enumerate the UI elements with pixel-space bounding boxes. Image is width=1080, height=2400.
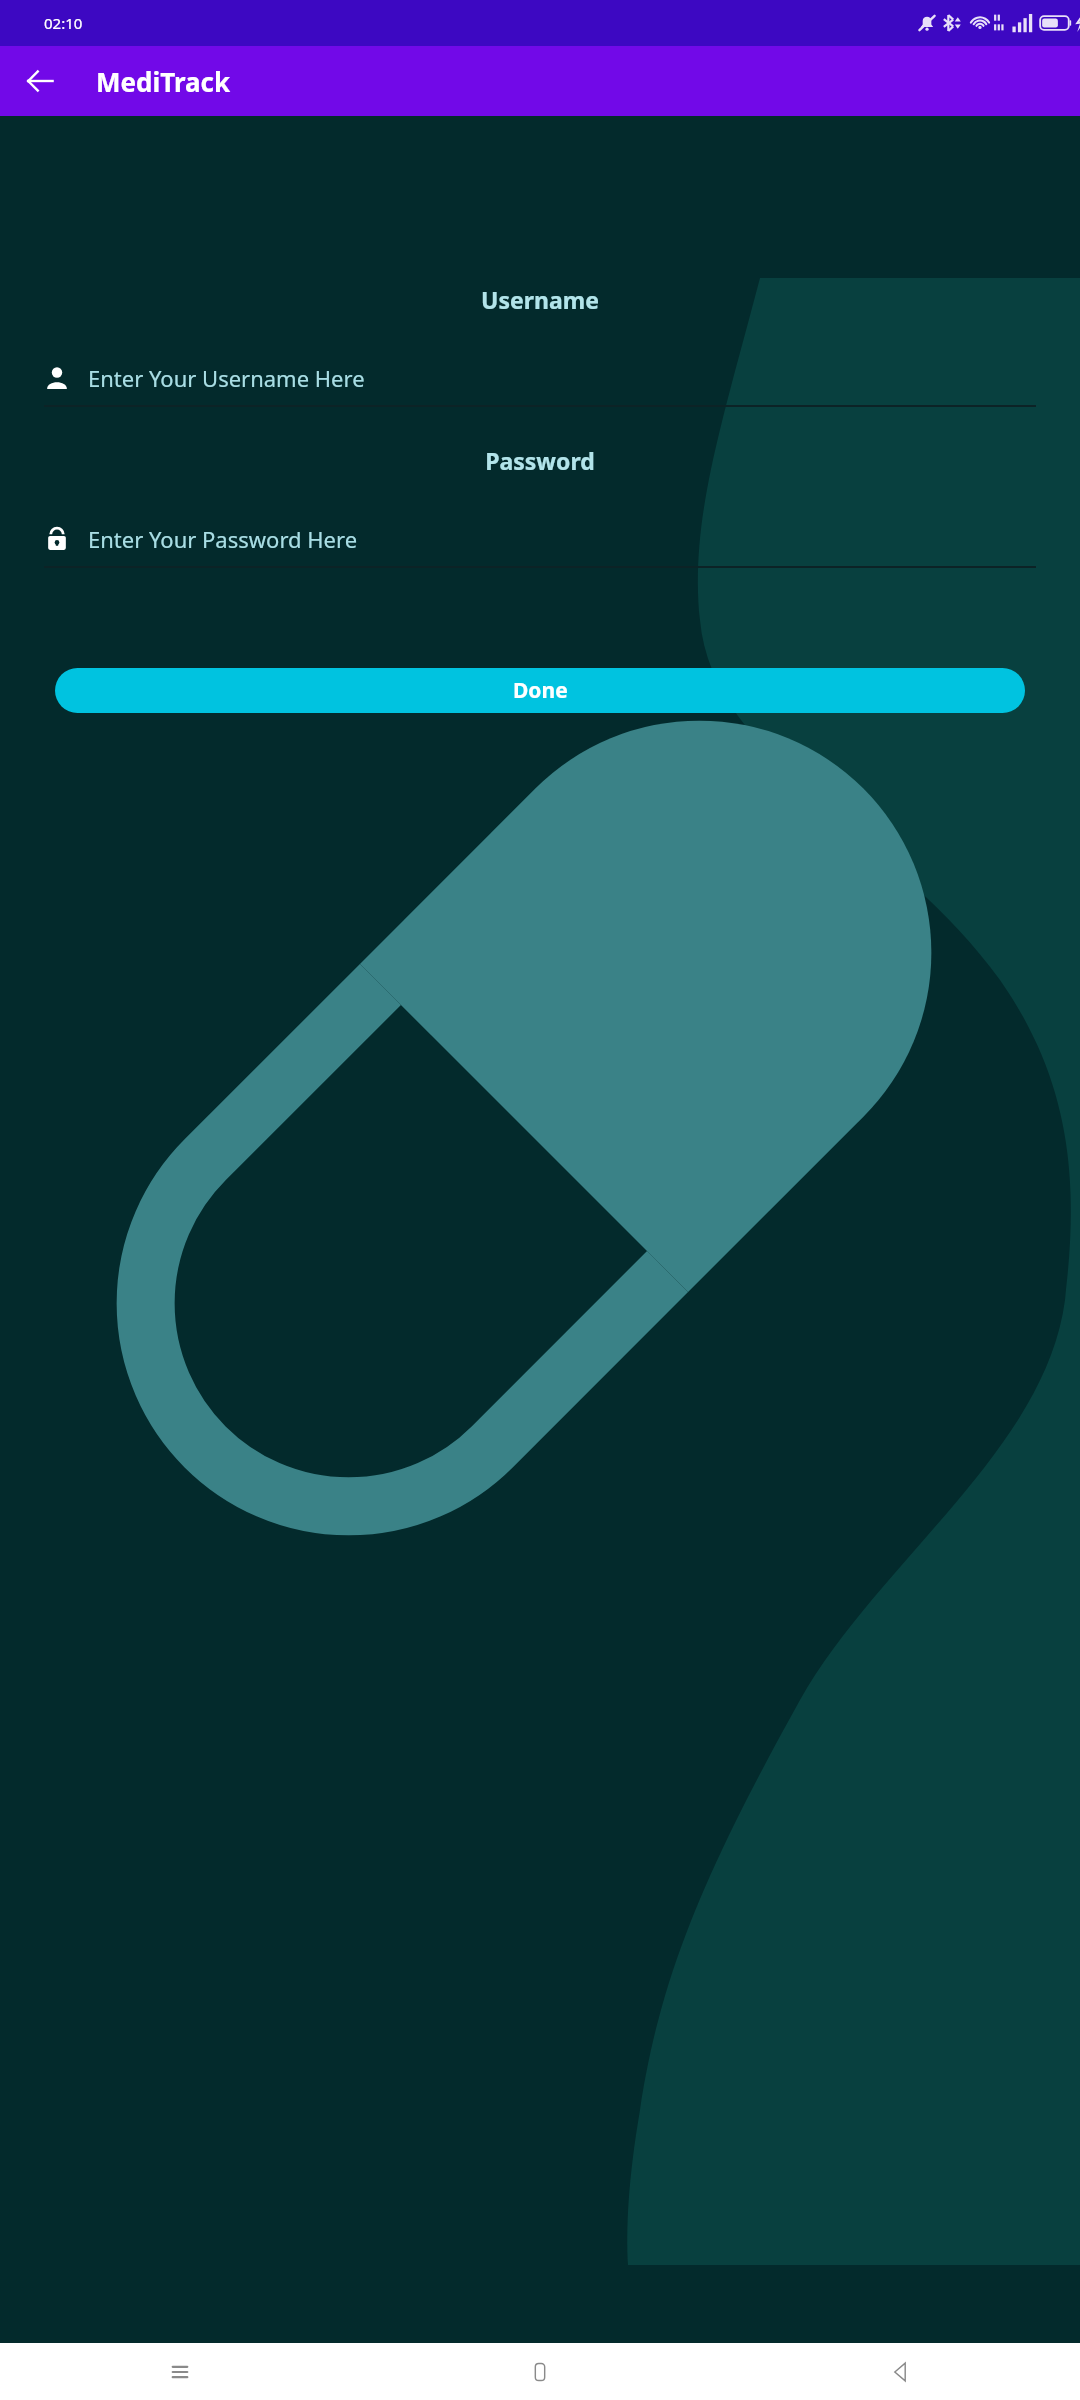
button[interactable]: Enter Your Username Here: [44, 357, 1036, 399]
button[interactable]: Enter Your Password Here: [44, 518, 1036, 560]
staticText: Username: [481, 284, 599, 315]
staticText: MediTrack: [96, 64, 231, 99]
button[interactable]: Back: [16, 57, 64, 105]
button[interactable]: Back: [720, 2343, 1080, 2400]
staticText: Enter Your Password Here: [88, 524, 358, 554]
staticText: 02:10: [44, 13, 83, 33]
staticText: Done: [513, 676, 568, 705]
button[interactable]: Home: [360, 2343, 720, 2400]
button[interactable]: Recent apps: [0, 2343, 360, 2400]
staticText: Password: [485, 445, 595, 476]
button[interactable]: Done: [55, 668, 1025, 713]
staticText: Enter Your Username Here: [88, 363, 365, 393]
